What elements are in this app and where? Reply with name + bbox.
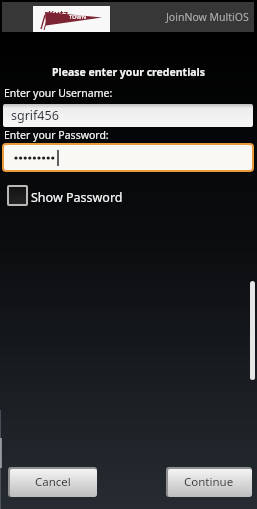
staticText: TOWN <box>69 13 87 20</box>
staticText: Continue <box>184 474 234 490</box>
button[interactable]: sgrif456 <box>3 104 253 127</box>
button[interactable]: Show Password <box>7 185 127 206</box>
button[interactable] <box>2 143 254 172</box>
button[interactable]: Cancel <box>8 467 97 497</box>
staticText: Kutz <box>48 7 69 19</box>
staticText: Please enter your credentials <box>0 65 257 79</box>
staticText: Enter your Username: <box>4 86 113 100</box>
staticText: Cancel <box>35 474 71 490</box>
staticText: JoinNow MultiOS <box>166 10 249 24</box>
staticText: sgrif456 <box>11 107 59 124</box>
button[interactable]: Continue <box>166 467 252 497</box>
staticText: Show Password <box>31 189 123 206</box>
staticText: Enter your Password: <box>4 128 109 142</box>
button[interactable]: Kutz <box>33 6 110 32</box>
